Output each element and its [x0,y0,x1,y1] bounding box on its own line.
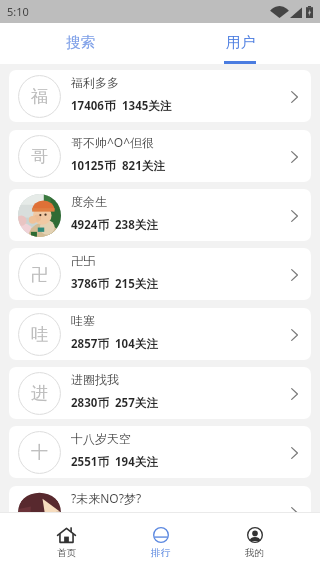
staticText: 哇 [31,324,48,345]
staticText: 首页 [57,547,76,559]
button[interactable]: 卍 [9,248,311,300]
staticText: 哇塞 [71,313,95,328]
staticText: 卍 [31,264,48,285]
staticText: 进 [31,383,48,404]
button[interactable]: 福 [9,70,311,122]
staticText: 3786币 [71,276,109,292]
button[interactable]: 搜索 [0,23,160,64]
staticText: 150关注 [115,514,158,530]
staticText: 十八岁天空 [71,431,131,446]
button[interactable]: 进 [9,367,311,419]
button[interactable]: Home [19,513,113,568]
button[interactable]: 度余生 [9,189,311,241]
staticText: 福 [31,86,48,107]
staticText: 用户 [226,33,255,51]
staticText: 哥 [31,146,48,167]
staticText: 哥不帅^O^但很 [71,134,155,150]
staticText: 10125币 [71,158,116,174]
staticText: 257关注 [115,395,158,411]
staticText: 238关注 [115,217,158,233]
staticText: 194关注 [115,454,158,470]
button[interactable]: Profile [207,513,301,568]
staticText: 17406币 [71,98,116,114]
staticText: 2551币 [71,454,109,470]
staticText: 十 [31,442,48,463]
button[interactable]: 哇 [9,308,311,360]
staticText: 度余生 [71,194,107,209]
staticText: 1345关注 [122,98,172,114]
button[interactable]: 用户 [160,23,320,64]
staticText: 我的 [245,547,264,559]
staticText: 2830币 [71,395,109,411]
button[interactable]: 哥 [9,130,311,182]
staticText: 821关注 [122,158,165,174]
staticText: 2857币 [71,336,109,352]
staticText: 4924币 [71,217,109,233]
staticText: ?未来NO?梦? [71,490,142,506]
staticText: 215关注 [115,276,158,292]
button[interactable]: ?未来NO?梦? [9,486,311,538]
staticText: 福利多多 [71,75,119,90]
button[interactable]: Ranking [113,513,207,568]
staticText: 进圈找我 [71,372,119,387]
staticText: 搜索 [66,33,95,51]
staticText: 2100币 [71,514,109,530]
staticText: 5:10 [7,4,29,19]
staticText: 卍卐 [71,253,95,268]
staticText: 排行 [151,547,170,559]
staticText: 104关注 [115,336,158,352]
button[interactable]: 十 [9,426,311,478]
